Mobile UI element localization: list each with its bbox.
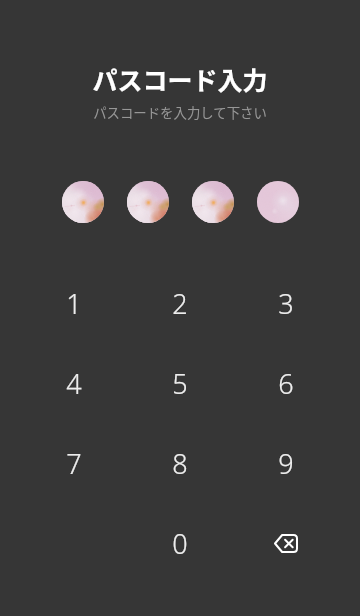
staticText: 5 xyxy=(172,365,188,402)
button[interactable]: 4 xyxy=(21,343,127,423)
button[interactable]: 9 xyxy=(233,423,339,503)
staticText: 1 xyxy=(66,285,82,322)
staticText: 0 xyxy=(172,525,188,562)
staticText: 3 xyxy=(278,285,294,322)
button[interactable]: 1 xyxy=(21,263,127,343)
button[interactable]: 7 xyxy=(21,423,127,503)
staticText: 7 xyxy=(66,445,82,482)
button[interactable]: 0 xyxy=(127,503,233,583)
staticText: 8 xyxy=(172,445,188,482)
button[interactable]: 2 xyxy=(127,263,233,343)
staticText: パスコードを入力して下さい xyxy=(93,102,267,121)
button[interactable]: 5 xyxy=(127,343,233,423)
staticText: 6 xyxy=(278,365,294,402)
staticText: パスコード入力 xyxy=(92,61,268,97)
button[interactable]: Delete xyxy=(233,503,339,583)
button[interactable]: 6 xyxy=(233,343,339,423)
button[interactable]: 8 xyxy=(127,423,233,503)
staticText: 4 xyxy=(66,365,82,402)
button[interactable]: 3 xyxy=(233,263,339,343)
staticText: 2 xyxy=(172,285,188,322)
staticText: 9 xyxy=(278,445,294,482)
